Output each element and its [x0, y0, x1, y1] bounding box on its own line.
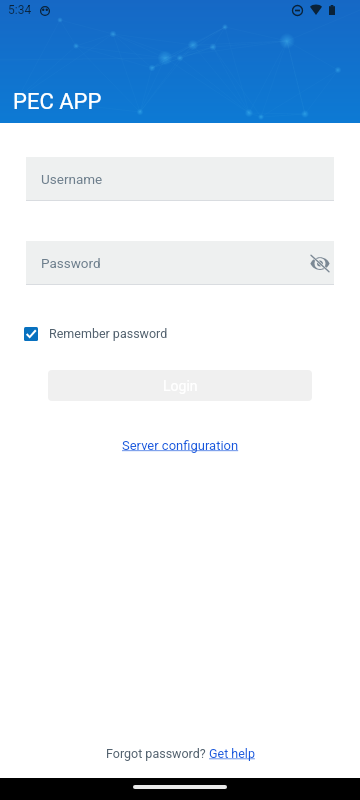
staticText: Username — [41, 171, 103, 187]
staticText: PEC APP — [13, 89, 102, 115]
button[interactable]: Remember password — [24, 326, 168, 341]
staticText: 5:34 — [8, 3, 32, 17]
button[interactable]: Server configuration — [118, 437, 243, 454]
button[interactable]: Show password — [308, 251, 332, 275]
button[interactable]: Username — [26, 157, 334, 201]
staticText: Password — [41, 255, 101, 271]
staticText: Forgot password? — [106, 746, 209, 761]
staticText: Login — [163, 378, 198, 394]
button[interactable]: Get help — [209, 746, 255, 761]
staticText: Remember password — [49, 326, 168, 341]
button[interactable]: Password — [26, 241, 334, 285]
